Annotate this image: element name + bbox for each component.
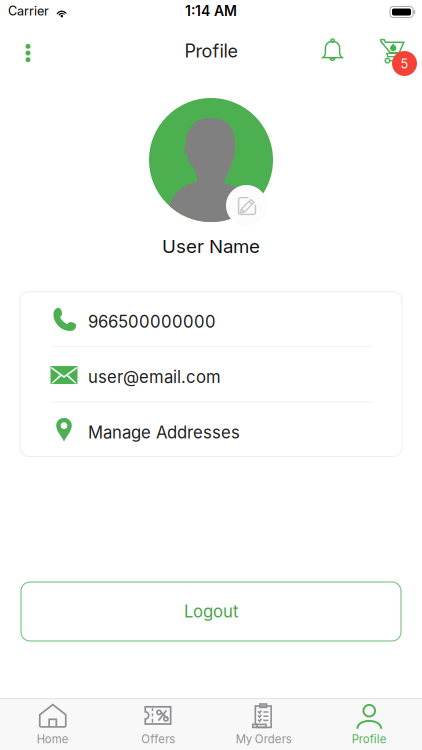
button[interactable]: user@email.com xyxy=(20,347,402,401)
button[interactable]: Profile xyxy=(316,699,422,750)
staticText: Manage Addresses xyxy=(88,422,240,442)
staticText: Offers xyxy=(141,732,175,746)
button[interactable]: More options xyxy=(3,31,53,75)
staticText: My Orders xyxy=(236,732,292,746)
staticText: user@email.com xyxy=(88,367,221,387)
staticText: Profile xyxy=(184,40,237,62)
staticText: Profile xyxy=(352,732,387,746)
staticText: User Name xyxy=(162,235,260,258)
staticText: Logout xyxy=(184,601,238,622)
staticText: 1:14 AM xyxy=(185,2,237,19)
staticText: 966500000000 xyxy=(88,312,216,332)
button[interactable]: Cart, 5 items xyxy=(372,30,418,78)
staticText: 5 xyxy=(400,56,408,72)
button[interactable]: My Orders xyxy=(211,699,316,750)
button[interactable]: Offers xyxy=(105,699,211,750)
button[interactable]: Logout xyxy=(21,582,401,641)
button[interactable]: 966500000000 xyxy=(20,292,402,346)
button[interactable]: Home xyxy=(0,699,105,750)
staticText: Carrier xyxy=(8,3,49,19)
button[interactable]: Manage Addresses xyxy=(20,402,402,456)
button[interactable]: Notifications xyxy=(312,28,353,73)
staticText: Home xyxy=(37,732,69,746)
